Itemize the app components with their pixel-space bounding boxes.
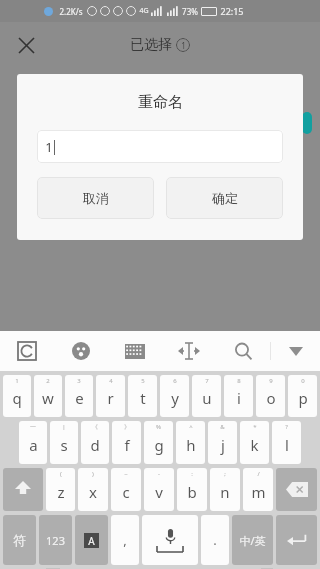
staticText: e [75,388,84,408]
staticText: h [186,435,196,455]
staticText: 8 [237,377,241,385]
staticText: 已选择 [130,36,172,54]
staticText: A [88,534,95,548]
staticText: 确定 [212,190,238,206]
button[interactable]: 5 [128,375,157,417]
staticText: , [123,531,127,549]
button[interactable]: Caps [75,515,108,565]
staticText: . [213,531,217,549]
button[interactable]: 0 [288,375,317,417]
button[interactable]: ( [46,468,75,511]
staticText: v [155,482,163,502]
staticText: 6 [173,377,177,385]
staticText: p [298,388,308,408]
staticText: ( [60,470,62,478]
button[interactable]: 7 [192,375,221,417]
button[interactable]: : [177,468,207,511]
staticText: l [285,435,289,455]
button[interactable]: 9 [256,375,285,417]
button[interactable]: ; [210,468,240,511]
button[interactable]: * [240,421,269,464]
staticText: ^ [189,423,193,431]
button[interactable]: Collapse keyboard [271,331,320,371]
button[interactable]: 1 [3,375,31,417]
staticText: f [124,435,130,455]
staticText: 123 [46,533,65,548]
staticText: 1 [181,40,186,51]
staticText: 1 [45,138,53,156]
staticText: & [220,423,225,431]
button[interactable]: & [208,421,237,464]
button[interactable]: Close [8,27,44,63]
button[interactable]: Delete [276,468,317,511]
button[interactable]: 1 [37,130,283,163]
button[interactable]: Search [216,331,270,371]
staticText: a [29,435,38,455]
button[interactable]: | [50,421,78,464]
button[interactable]: Emoji [54,331,108,371]
button[interactable]: 4 [96,375,125,417]
button[interactable]: Period [201,515,229,565]
staticText: ; [224,470,226,478]
button[interactable]: 3 [65,375,93,417]
staticText: 73% [182,6,198,17]
button[interactable]: Keyboard [108,331,162,371]
button[interactable]: Comma [111,515,139,565]
button[interactable]: 《 [81,421,109,464]
staticText: 《 [92,423,98,431]
staticText: % [156,423,161,431]
button[interactable]: % [144,421,173,464]
button[interactable]: - [144,468,174,511]
staticText: 重命名 [138,93,183,112]
button[interactable]: Enter [276,515,317,565]
staticText: m [251,482,266,502]
staticText: | [62,423,66,431]
staticText: 9 [269,377,273,385]
button[interactable]: 》 [112,421,141,464]
button[interactable]: 6 [160,375,189,417]
button[interactable]: Shift [3,468,43,511]
button[interactable]: 一 [19,421,47,464]
button[interactable]: Sogou input [0,331,54,371]
button[interactable]: ) [78,468,108,511]
staticText: x [89,482,97,502]
staticText: * [253,423,257,431]
staticText: g [154,435,164,455]
staticText: 4G [139,6,149,16]
button[interactable]: ~ [111,468,141,511]
button[interactable]: 取消 [37,177,154,219]
staticText: ? [285,423,288,431]
staticText: 符 [13,532,26,548]
staticText: n [220,482,230,502]
button[interactable]: / [243,468,273,511]
button[interactable]: Space / voice input [142,515,198,565]
staticText: s [60,435,68,455]
button[interactable]: Symbols [3,515,36,565]
staticText: 取消 [83,190,109,206]
button[interactable]: ^ [176,421,205,464]
button[interactable]: 8 [224,375,253,417]
staticText: t [140,388,146,408]
staticText: j [221,435,225,455]
staticText: 》 [124,423,130,431]
staticText: 4 [109,377,113,385]
staticText: / [257,470,260,478]
button[interactable]: Chinese English toggle [232,515,273,565]
staticText: - [158,470,160,478]
button[interactable]: 2 [34,375,62,417]
staticText: 中/英 [239,533,266,548]
staticText: : [191,470,193,478]
staticText: 7 [205,377,209,385]
staticText: ) [92,470,94,478]
button[interactable]: Move cursor [162,331,216,371]
staticText: 2.2K/s [59,6,83,17]
staticText: o [266,388,276,408]
button[interactable]: Numbers [39,515,72,565]
staticText: ~ [124,470,128,478]
staticText: b [187,482,197,502]
staticText: 3 [77,377,81,385]
staticText: w [42,388,54,408]
staticText: r [107,388,114,408]
button[interactable]: 确定 [166,177,283,219]
button[interactable]: ? [272,421,301,464]
